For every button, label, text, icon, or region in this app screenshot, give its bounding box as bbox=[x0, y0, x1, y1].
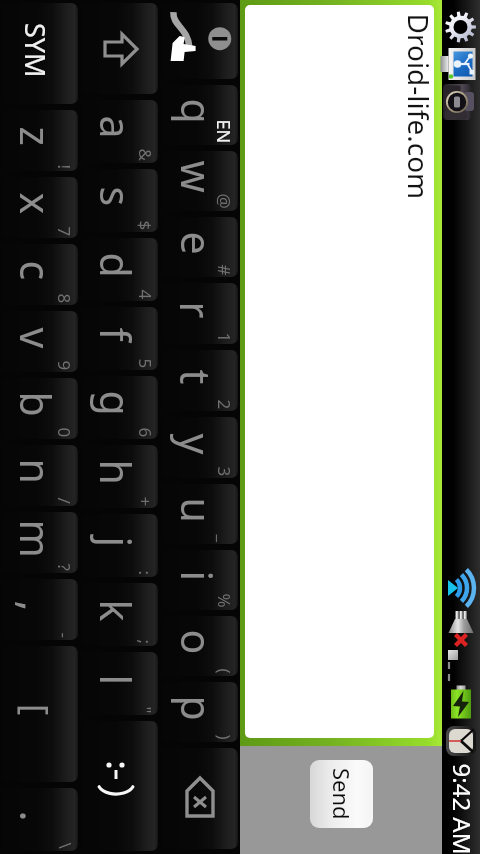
staticText: . bbox=[7, 810, 63, 821]
button[interactable]: u bbox=[162, 484, 238, 544]
button[interactable]: Space bbox=[2, 646, 78, 782]
staticText: % bbox=[212, 593, 235, 608]
button[interactable]: d bbox=[82, 238, 158, 301]
button[interactable]: x bbox=[2, 177, 78, 238]
staticText: i bbox=[168, 570, 224, 581]
button[interactable]: o bbox=[162, 616, 238, 676]
button[interactable]: r bbox=[162, 283, 238, 344]
staticText: v bbox=[7, 327, 63, 348]
staticText: 8 bbox=[52, 293, 75, 303]
button[interactable]: f bbox=[82, 307, 158, 370]
button[interactable]: Delete bbox=[162, 748, 238, 849]
staticText: 2 bbox=[212, 399, 235, 409]
staticText: EN bbox=[210, 119, 235, 143]
staticText: x bbox=[7, 192, 63, 214]
staticText: o bbox=[168, 629, 224, 654]
staticText: j bbox=[87, 536, 143, 547]
staticText: \ bbox=[53, 842, 76, 849]
staticText: [ bbox=[13, 704, 59, 716]
staticText: 6 bbox=[133, 427, 156, 437]
staticText: q bbox=[168, 98, 224, 124]
button[interactable]: SYM bbox=[2, 3, 78, 104]
staticText: d bbox=[87, 252, 143, 278]
button[interactable]: b bbox=[2, 378, 78, 439]
staticText: a bbox=[87, 115, 143, 139]
button[interactable]: t bbox=[162, 350, 238, 411]
staticText: 0 bbox=[52, 427, 75, 437]
button[interactable]: Send bbox=[310, 760, 373, 828]
staticText: Droid-life.com bbox=[399, 13, 434, 199]
button[interactable]: . bbox=[2, 788, 78, 851]
button[interactable]: c bbox=[2, 244, 78, 305]
button[interactable]: Input method bbox=[162, 3, 238, 79]
staticText: g bbox=[87, 390, 143, 416]
staticText: & bbox=[133, 148, 156, 161]
button[interactable]: p bbox=[162, 682, 238, 742]
staticText: ) bbox=[212, 734, 235, 740]
button[interactable]: q bbox=[162, 85, 238, 145]
staticText: , bbox=[7, 600, 63, 611]
button[interactable]: g bbox=[82, 376, 158, 439]
staticText: 9 bbox=[52, 360, 75, 370]
button[interactable]: z bbox=[2, 110, 78, 171]
button[interactable]: w bbox=[162, 151, 238, 211]
staticText: y bbox=[167, 433, 223, 454]
staticText: h bbox=[87, 459, 143, 485]
staticText: / bbox=[52, 497, 75, 504]
button[interactable]: Shift bbox=[82, 3, 158, 94]
staticText: e bbox=[168, 231, 224, 255]
button[interactable]: h bbox=[82, 445, 158, 508]
staticText: z bbox=[7, 126, 63, 146]
staticText: w bbox=[168, 160, 224, 193]
staticText: l bbox=[87, 674, 143, 685]
button[interactable]: s bbox=[82, 169, 158, 232]
button[interactable]: l bbox=[82, 652, 158, 715]
staticText: s bbox=[87, 186, 143, 206]
staticText: r bbox=[167, 301, 223, 318]
staticText: " bbox=[133, 706, 156, 713]
staticText: ; bbox=[133, 639, 156, 644]
button[interactable]: e bbox=[162, 217, 238, 277]
staticText: k bbox=[87, 599, 143, 621]
staticText: u bbox=[168, 497, 224, 523]
button[interactable]: j bbox=[82, 514, 158, 577]
staticText: 3 bbox=[212, 466, 235, 476]
button[interactable]: i bbox=[162, 550, 238, 610]
staticText: t bbox=[167, 369, 223, 384]
button[interactable]: n bbox=[2, 445, 78, 506]
button[interactable]: Emoticon bbox=[82, 721, 158, 851]
staticText: 7 bbox=[52, 226, 75, 236]
staticText: ( bbox=[212, 668, 235, 674]
staticText: n bbox=[7, 458, 63, 484]
staticText: c bbox=[7, 260, 63, 280]
button[interactable]: v bbox=[2, 311, 78, 372]
staticText: m bbox=[7, 519, 63, 558]
staticText: - bbox=[52, 632, 75, 638]
button[interactable]: Droid-life.com bbox=[245, 5, 434, 738]
staticText: SYM bbox=[17, 23, 54, 78]
button[interactable]: m bbox=[2, 512, 78, 573]
staticText: 5 bbox=[133, 358, 156, 368]
staticText: p bbox=[168, 695, 224, 721]
staticText: _ bbox=[212, 534, 235, 542]
staticText: # bbox=[212, 264, 235, 275]
staticText: 4 bbox=[133, 289, 156, 299]
staticText: b bbox=[7, 391, 63, 417]
staticText: f bbox=[87, 327, 143, 342]
button[interactable]: y bbox=[162, 417, 238, 478]
staticText: ! bbox=[52, 164, 75, 169]
button[interactable]: a bbox=[82, 100, 158, 163]
staticText: Send bbox=[327, 768, 357, 820]
button[interactable]: k bbox=[82, 583, 158, 646]
staticText: 1 bbox=[212, 332, 235, 342]
staticText: 9:42 AM bbox=[445, 763, 478, 854]
staticText: : bbox=[133, 570, 156, 575]
button[interactable]: , bbox=[2, 579, 78, 640]
staticText: $ bbox=[133, 220, 156, 230]
staticText: ? bbox=[52, 563, 75, 571]
staticText: @ bbox=[212, 193, 235, 209]
staticText: + bbox=[133, 496, 156, 506]
